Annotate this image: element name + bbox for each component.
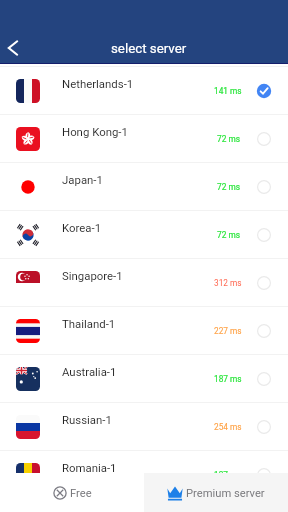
button[interactable]: Singapore-1 bbox=[0, 259, 288, 306]
staticText: Premium server bbox=[186, 487, 265, 500]
button[interactable]: Back bbox=[0, 35, 26, 61]
staticText: Romania-1 bbox=[62, 461, 117, 474]
button[interactable]: Hong Kong-1 bbox=[0, 115, 288, 162]
staticText: Singapore-1 bbox=[62, 269, 123, 282]
staticText: Korea-1 bbox=[62, 221, 102, 234]
staticText: 187 ms bbox=[214, 374, 242, 384]
staticText: 312 ms bbox=[214, 278, 242, 288]
staticText: Free bbox=[70, 487, 92, 500]
staticText: 72 ms bbox=[217, 230, 240, 240]
staticText: Japan-1 bbox=[62, 173, 103, 186]
staticText: Hong Kong-1 bbox=[62, 125, 128, 138]
staticText: 72 ms bbox=[217, 134, 240, 144]
staticText: Russian-1 bbox=[62, 413, 112, 426]
button[interactable]: Romania-1 bbox=[0, 451, 288, 498]
button[interactable]: Thailand-1 bbox=[0, 307, 288, 354]
button[interactable]: Australia-1 bbox=[0, 355, 288, 402]
staticText: Netherlands-1 bbox=[62, 77, 134, 90]
staticText: 227 ms bbox=[214, 326, 242, 336]
button[interactable]: Free bbox=[0, 473, 144, 512]
button[interactable]: Russian-1 bbox=[0, 403, 288, 450]
button[interactable]: Premium server bbox=[144, 473, 288, 512]
button[interactable]: Netherlands-1 bbox=[0, 67, 288, 114]
button[interactable]: Japan-1 bbox=[0, 163, 288, 210]
staticText: 137 ms bbox=[214, 470, 242, 480]
staticText: select server bbox=[111, 41, 187, 57]
button[interactable]: Korea-1 bbox=[0, 211, 288, 258]
staticText: Thailand-1 bbox=[62, 317, 116, 330]
staticText: Australia-1 bbox=[62, 365, 117, 378]
staticText: 141 ms bbox=[214, 86, 242, 96]
staticText: 254 ms bbox=[214, 422, 242, 432]
staticText: 72 ms bbox=[217, 182, 240, 192]
